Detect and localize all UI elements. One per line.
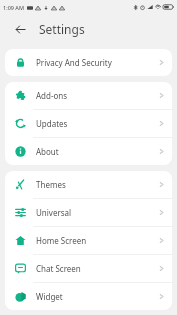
- staticText: Settings: [39, 21, 85, 37]
- staticText: About: [36, 146, 159, 157]
- staticText: Themes: [36, 179, 159, 190]
- button[interactable]: Home Screen: [5, 227, 172, 254]
- staticText: Add-ons: [36, 90, 159, 101]
- button[interactable]: Privacy And Security: [5, 49, 172, 76]
- staticText: Chat Screen: [36, 263, 159, 274]
- button[interactable]: Back: [10, 19, 30, 39]
- staticText: Updates: [36, 118, 159, 129]
- staticText: Universal: [36, 207, 159, 218]
- button[interactable]: Widget: [5, 283, 172, 310]
- button[interactable]: Themes: [5, 171, 172, 198]
- button[interactable]: Universal: [5, 199, 172, 226]
- staticText: 1:09 AM: [3, 4, 25, 11]
- button[interactable]: Updates: [5, 110, 172, 137]
- button[interactable]: Add-ons: [5, 82, 172, 109]
- staticText: Privacy And Security: [36, 57, 159, 68]
- staticText: Home Screen: [36, 235, 159, 246]
- staticText: Widget: [36, 291, 159, 302]
- button[interactable]: About: [5, 138, 172, 165]
- button[interactable]: Chat Screen: [5, 255, 172, 282]
